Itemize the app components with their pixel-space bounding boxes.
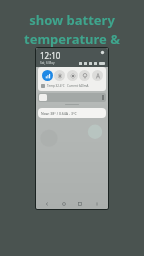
button[interactable]: Quick setting 3: [79, 70, 90, 81]
button[interactable]: Now: 38° / 0.64A - 3°C: [38, 108, 106, 118]
button[interactable]: Quick setting 4: [92, 70, 103, 81]
staticText: Sat, 6 May: [40, 61, 55, 65]
button[interactable]: Recents: [75, 199, 85, 209]
button[interactable]: [38, 93, 106, 102]
button[interactable]: Menu: [92, 199, 102, 209]
button[interactable]: Settings: [100, 50, 105, 55]
staticText: Now: 38° / 0.64A - 3°C: [41, 111, 77, 116]
button[interactable]: Quick setting 0: [42, 70, 53, 81]
staticText: 12:10: [40, 50, 61, 61]
button[interactable]: Quick setting 1: [54, 70, 65, 81]
staticText: temperature & current: [0, 30, 144, 63]
staticText: Temp 32.4°C Current 640mA: [47, 84, 89, 88]
button[interactable]: Quick setting 2: [67, 70, 78, 81]
staticText: show battery: [29, 11, 115, 29]
button[interactable]: Home: [59, 199, 69, 209]
button[interactable]: Back: [42, 199, 52, 209]
